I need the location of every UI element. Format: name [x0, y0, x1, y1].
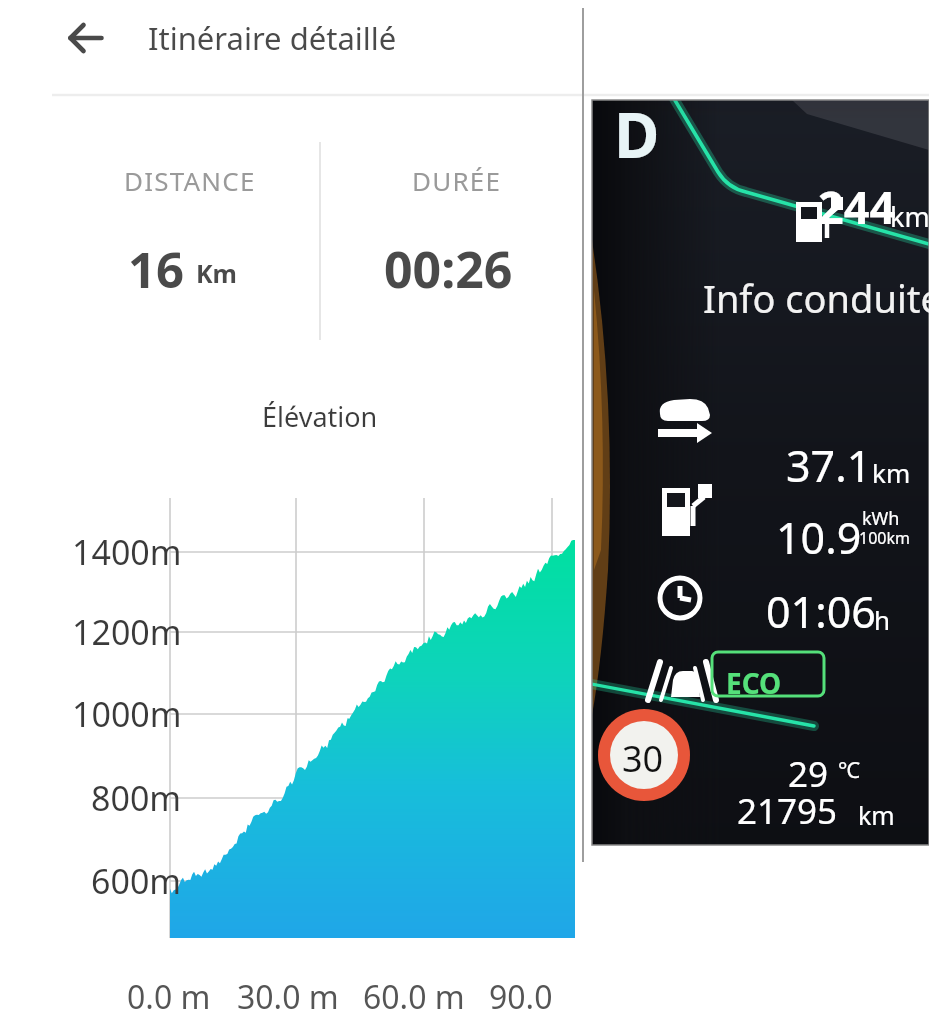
staticText: 1200m — [72, 609, 182, 655]
staticText: km — [890, 198, 929, 235]
staticText: 90.0 — [489, 975, 553, 1019]
staticText: 60.0 m — [363, 975, 465, 1019]
staticText: DURÉE — [412, 163, 502, 198]
staticText: 1000m — [72, 691, 182, 737]
staticText: 16 — [128, 236, 185, 303]
staticText: 0.0 m — [127, 975, 211, 1019]
staticText: 21795 — [737, 787, 838, 835]
staticText: 37.1 — [786, 436, 872, 495]
staticText: Itinéraire détaillé — [148, 17, 397, 59]
staticText: 1400m — [72, 529, 182, 575]
staticText: 100km — [859, 527, 910, 549]
staticText: Élévation — [262, 398, 378, 435]
staticText: h — [874, 602, 891, 637]
staticText: 244 — [818, 176, 896, 237]
staticText: D — [614, 92, 660, 176]
staticText: km — [872, 455, 911, 490]
staticText: 10.9 — [776, 508, 862, 567]
staticText: Info conduite — [703, 272, 929, 324]
staticText: Km — [196, 256, 237, 290]
staticText: 600m — [91, 858, 182, 904]
staticText: ℃ — [838, 754, 860, 784]
button[interactable]: Back — [56, 10, 116, 66]
staticText: 800m — [91, 775, 182, 821]
staticText: 30.0 m — [237, 975, 339, 1019]
staticText: DISTANCE — [124, 163, 256, 198]
staticText: kWh — [862, 506, 900, 531]
staticText: 00:26 — [384, 235, 513, 303]
staticText: ECO — [726, 664, 782, 702]
staticText: km — [858, 798, 895, 832]
staticText: 01:06 — [766, 582, 876, 641]
staticText: 29 — [788, 750, 829, 798]
staticText: 30 — [622, 734, 664, 783]
